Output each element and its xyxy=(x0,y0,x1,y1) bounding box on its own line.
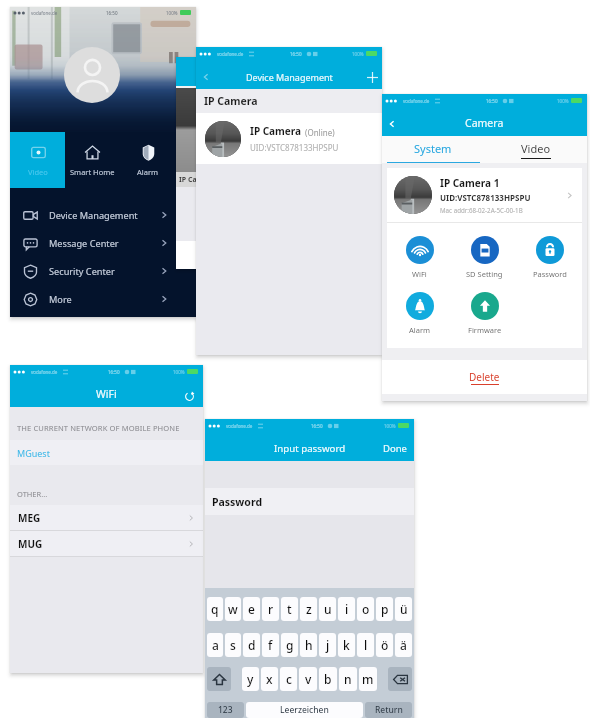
button[interactable]: Leerzeichen xyxy=(246,702,363,718)
staticText: c xyxy=(286,671,292,687)
staticText: 100% xyxy=(173,369,185,375)
staticText: Device Management xyxy=(49,209,138,222)
staticText: 100% xyxy=(352,51,364,57)
button[interactable]: o xyxy=(357,597,374,621)
button[interactable]: i xyxy=(338,597,355,621)
button[interactable]: w xyxy=(225,597,241,621)
staticText: 123 xyxy=(218,704,233,716)
staticText: Done xyxy=(383,442,407,455)
button[interactable]: Video xyxy=(484,136,587,163)
button[interactable]: Return xyxy=(365,702,412,718)
button[interactable]: q xyxy=(207,597,223,621)
button[interactable]: h xyxy=(300,633,317,657)
button[interactable]: ö xyxy=(376,633,393,657)
button[interactable]: y xyxy=(242,667,259,691)
staticText: SD Setting xyxy=(466,269,503,279)
staticText: UID:VSTC878133HPSPU xyxy=(250,142,339,153)
staticText: UID:VSTC878133HPSPU xyxy=(440,192,531,203)
staticText: l xyxy=(364,637,368,653)
button[interactable]: System xyxy=(382,136,484,163)
staticText: Input password xyxy=(274,442,346,455)
button[interactable]: b xyxy=(319,667,337,691)
staticText: h xyxy=(305,637,313,653)
button[interactable]: WiFi xyxy=(387,236,452,279)
staticText: Device Management xyxy=(246,71,333,83)
button[interactable]: d xyxy=(243,633,260,657)
staticText: q xyxy=(211,601,219,617)
button[interactable]: IP Camera 1 xyxy=(387,168,582,222)
button[interactable]: IP Camera xyxy=(196,113,382,164)
button[interactable]: k xyxy=(338,633,355,657)
button[interactable]: SD Setting xyxy=(452,236,517,279)
staticText: s xyxy=(230,637,236,653)
staticText: Alarm xyxy=(137,167,159,177)
button[interactable]: Firmware xyxy=(452,292,517,335)
staticText: WiFi xyxy=(96,387,117,401)
button[interactable]: r xyxy=(262,597,279,621)
button[interactable]: Back xyxy=(199,70,213,84)
button[interactable]: Back xyxy=(385,117,399,131)
button[interactable]: More xyxy=(10,285,175,313)
button[interactable]: Done xyxy=(383,442,407,455)
staticText: 16:50 xyxy=(486,98,498,104)
button[interactable]: ü xyxy=(395,597,412,621)
button[interactable]: Video xyxy=(10,132,65,188)
button[interactable]: MUG xyxy=(10,531,203,556)
button[interactable]: ä xyxy=(395,633,412,657)
staticText: Alarm xyxy=(409,325,431,335)
button[interactable]: m xyxy=(359,667,377,691)
button[interactable]: Message Center xyxy=(10,229,175,257)
button[interactable]: Security Center xyxy=(10,257,175,285)
staticText: 16:50 xyxy=(108,369,120,375)
staticText: f xyxy=(268,637,273,653)
staticText: g xyxy=(286,637,294,653)
button[interactable]: Delete xyxy=(382,360,587,394)
staticText: Password xyxy=(533,269,567,279)
button[interactable]: Password xyxy=(517,236,582,279)
button[interactable]: l xyxy=(357,633,374,657)
button[interactable]: a xyxy=(207,633,223,657)
button[interactable]: Refresh xyxy=(182,389,196,403)
staticText: Mac addr:68-02-2A-5C-00-1B xyxy=(440,206,523,214)
staticText: (Online) xyxy=(305,127,335,138)
button[interactable]: x xyxy=(261,667,278,691)
button[interactable]: e xyxy=(243,597,260,621)
staticText: OTHER... xyxy=(17,489,48,499)
button[interactable]: n xyxy=(339,667,357,691)
button[interactable]: Device Management xyxy=(10,201,175,229)
staticText: IP Camera 1 xyxy=(440,176,500,190)
staticText: MUG xyxy=(18,537,43,551)
button[interactable]: f xyxy=(262,633,279,657)
staticText: ö xyxy=(381,637,389,653)
button[interactable]: Add device xyxy=(364,69,380,85)
button[interactable]: Shift xyxy=(207,667,231,691)
button[interactable]: z xyxy=(300,597,317,621)
staticText: b xyxy=(324,671,332,687)
button[interactable]: Smart Home xyxy=(65,132,120,188)
staticText: Firmware xyxy=(468,325,502,335)
staticText: Leerzeichen xyxy=(280,704,329,716)
staticText: Message Center xyxy=(49,237,119,250)
button[interactable]: j xyxy=(319,633,336,657)
staticText: System xyxy=(414,141,452,156)
staticText: n xyxy=(344,671,352,687)
staticText: IP Camera xyxy=(250,124,302,138)
button[interactable]: MGuest xyxy=(10,440,203,465)
button[interactable]: g xyxy=(281,633,298,657)
staticText: IP Cam xyxy=(179,175,204,185)
button[interactable]: 123 xyxy=(207,702,244,718)
button[interactable]: MEG xyxy=(10,505,203,530)
button[interactable]: Alarm xyxy=(120,132,175,188)
button[interactable]: s xyxy=(225,633,241,657)
button[interactable]: v xyxy=(299,667,317,691)
button[interactable]: t xyxy=(281,597,298,621)
button[interactable]: Alarm xyxy=(387,292,452,335)
button[interactable]: u xyxy=(319,597,336,621)
staticText: MGuest xyxy=(17,447,50,459)
staticText: IP Camera xyxy=(204,94,258,108)
button[interactable]: c xyxy=(280,667,297,691)
button[interactable]: Backspace xyxy=(388,667,412,691)
button[interactable]: p xyxy=(376,597,393,621)
staticText: d xyxy=(248,637,256,653)
staticText: 16:50 xyxy=(106,10,118,16)
